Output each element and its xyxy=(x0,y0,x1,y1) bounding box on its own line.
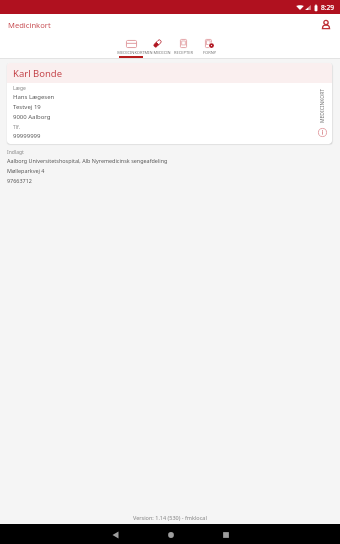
staticText: MEDICINKORT xyxy=(117,50,145,55)
staticText: Indlagt xyxy=(7,149,24,156)
button[interactable]: MIN MEDICIN xyxy=(144,35,170,58)
staticText: Læge xyxy=(13,85,26,92)
staticText: 9000 Aalborg xyxy=(13,113,51,121)
button[interactable]: Home xyxy=(162,526,179,543)
staticText: Testvej 19 xyxy=(13,103,41,111)
staticText: Hans Lægesen xyxy=(13,93,55,101)
staticText: 99999999 xyxy=(13,132,41,140)
button[interactable]: FORNY xyxy=(196,35,222,58)
staticText: Tlf. xyxy=(13,124,21,131)
button[interactable]: RECEPTER xyxy=(170,35,196,58)
button[interactable]: Back xyxy=(107,526,124,543)
staticText: Medicinkort xyxy=(8,20,51,30)
staticText: Karl Bonde xyxy=(13,67,63,80)
staticText: FORNY xyxy=(203,50,216,55)
staticText: MIN MEDICIN xyxy=(144,50,171,55)
button[interactable]: Profile xyxy=(318,17,333,32)
button[interactable]: Karl Bonde xyxy=(7,63,332,144)
staticText: Aalborg Universitetshospital, Alb Nyreme… xyxy=(7,157,168,164)
staticText: 97663712 xyxy=(7,177,32,184)
button[interactable]: Information xyxy=(316,126,328,138)
staticText: 8:29 xyxy=(321,3,335,12)
button[interactable]: MEDICINKORT xyxy=(118,35,144,58)
button[interactable]: Recent apps xyxy=(217,526,234,543)
staticText: Mølleparkvej 4 xyxy=(7,167,45,174)
staticText: RECEPTER xyxy=(174,50,193,55)
staticText: MEDICINKORT xyxy=(319,88,326,123)
staticText: Version: 1.14 (530) - fmklocal xyxy=(133,514,207,521)
